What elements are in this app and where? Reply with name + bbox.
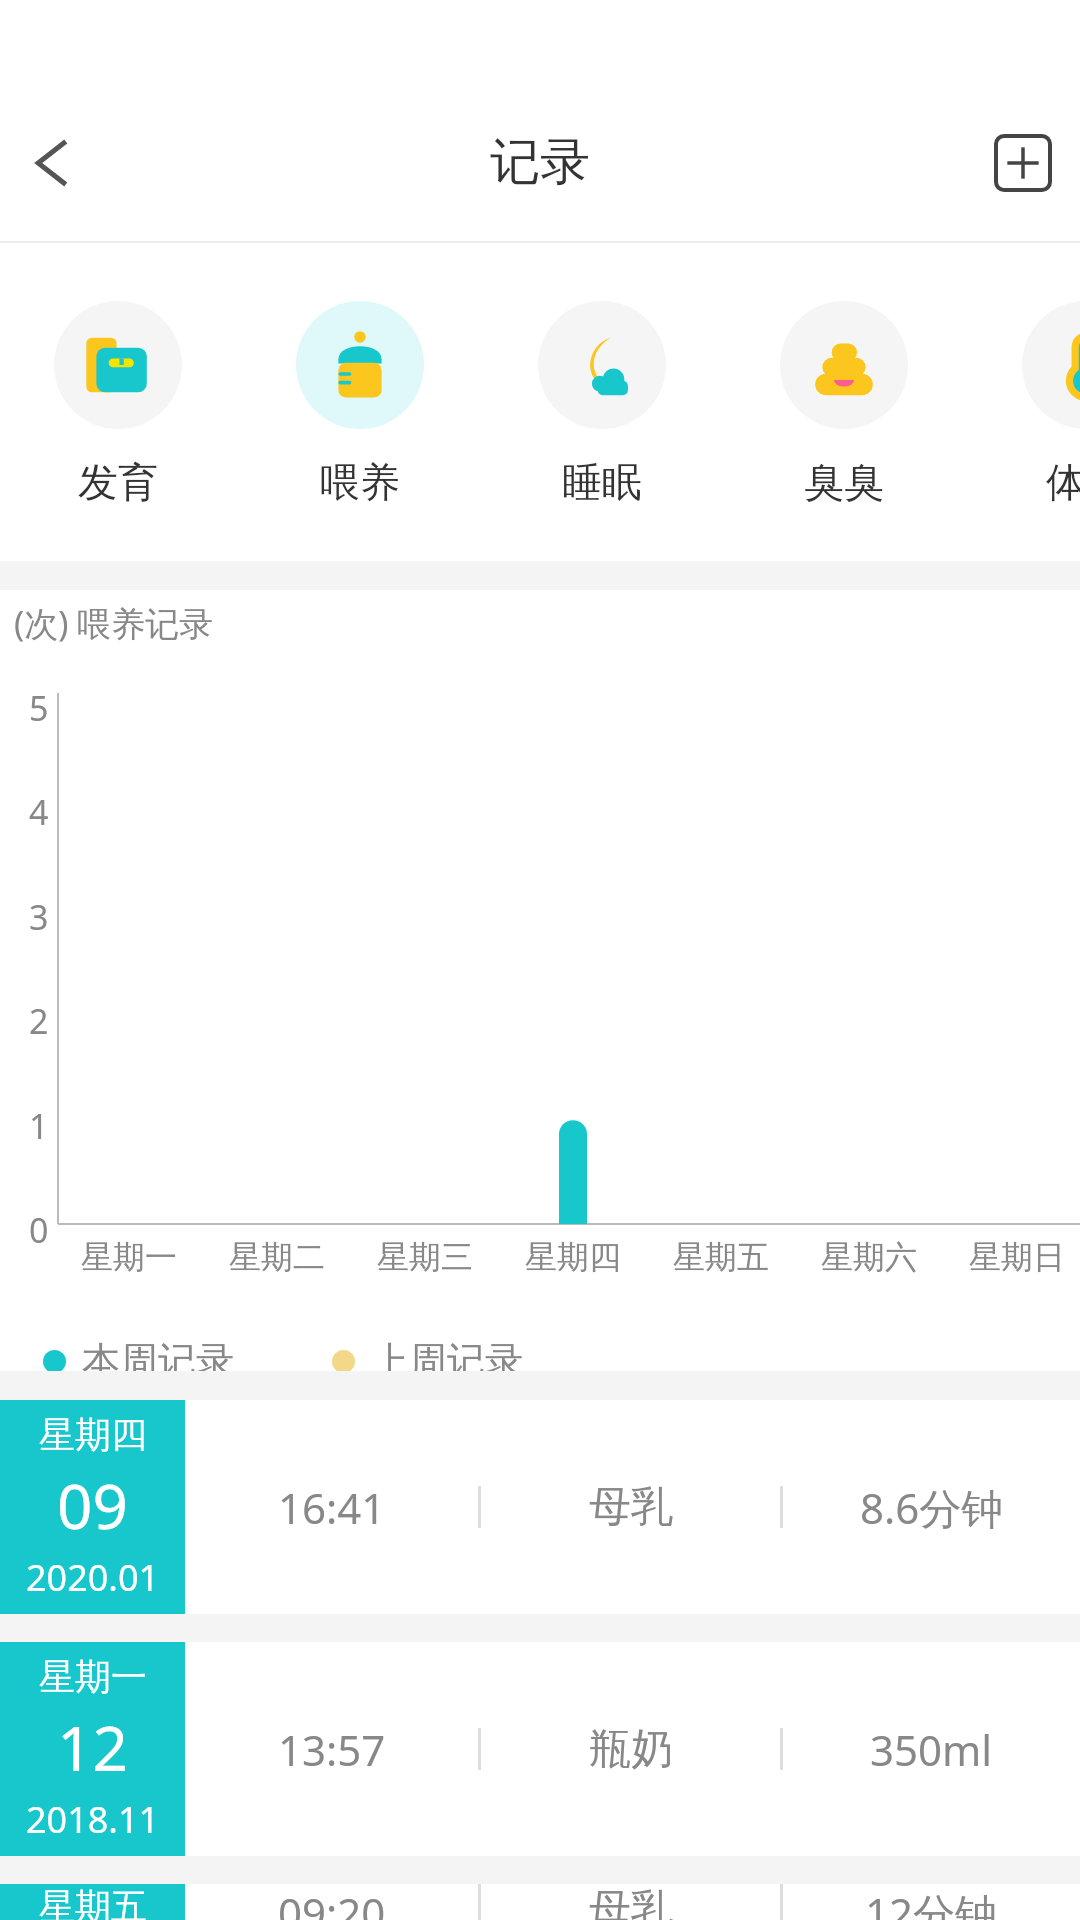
staticText: 8.6分钟 [860,1479,1004,1536]
staticText: 0 [29,1207,49,1253]
staticText: 本周记录 [82,1337,234,1385]
staticText: 4 [29,789,49,835]
staticText: 星期一 [39,1654,147,1699]
button[interactable]: Back [0,108,110,218]
staticText: 星期二 [217,1237,337,1277]
staticText: 记录 [490,131,590,194]
staticText: 2020.01 [26,1553,160,1602]
staticText: 2018.11 [26,1795,160,1844]
staticText: 09:20 [278,1884,386,1920]
button[interactable]: 发育 [18,243,218,503]
button[interactable]: 喂养 [260,243,460,503]
staticText: 星期一 [69,1237,189,1277]
staticText: 1 [29,1103,49,1149]
staticText: 星期日 [957,1237,1077,1277]
staticText: 母乳 [589,1481,673,1534]
staticText: 星期三 [365,1237,485,1277]
staticText: 13:57 [278,1721,386,1778]
staticText: 350ml [870,1721,993,1778]
staticText: 09 [57,1463,128,1547]
button[interactable]: 臭臭 [744,243,944,503]
button[interactable]: 星期五 [0,1884,1080,1920]
staticText: 星期五 [39,1884,147,1920]
staticText: 3 [29,894,49,940]
button[interactable]: 睡眠 [502,243,702,503]
staticText: 星期四 [513,1237,633,1277]
staticText: 体温 [1046,457,1080,503]
button[interactable]: 星期一 [0,1642,1080,1856]
staticText: 16:41 [278,1479,386,1536]
button[interactable]: 星期四 [0,1400,1080,1614]
staticText: 发育 [78,457,158,503]
staticText: 2 [29,998,49,1044]
staticText: 星期四 [39,1412,147,1457]
staticText: 12 [57,1705,128,1789]
staticText: 上周记录 [371,1337,523,1385]
staticText: 瓶奶 [589,1723,673,1776]
staticText: 星期六 [809,1237,929,1277]
button[interactable]: Add [996,136,1050,190]
staticText: (次) 喂养记录 [14,600,214,646]
button[interactable]: 体温 [986,243,1080,503]
staticText: 喂养 [320,457,400,503]
staticText: 星期五 [661,1237,781,1277]
staticText: 睡眠 [562,457,642,503]
staticText: 5 [29,685,49,731]
staticText: 母乳 [589,1884,673,1920]
staticText: 12分钟 [865,1884,998,1920]
staticText: 臭臭 [804,457,884,503]
